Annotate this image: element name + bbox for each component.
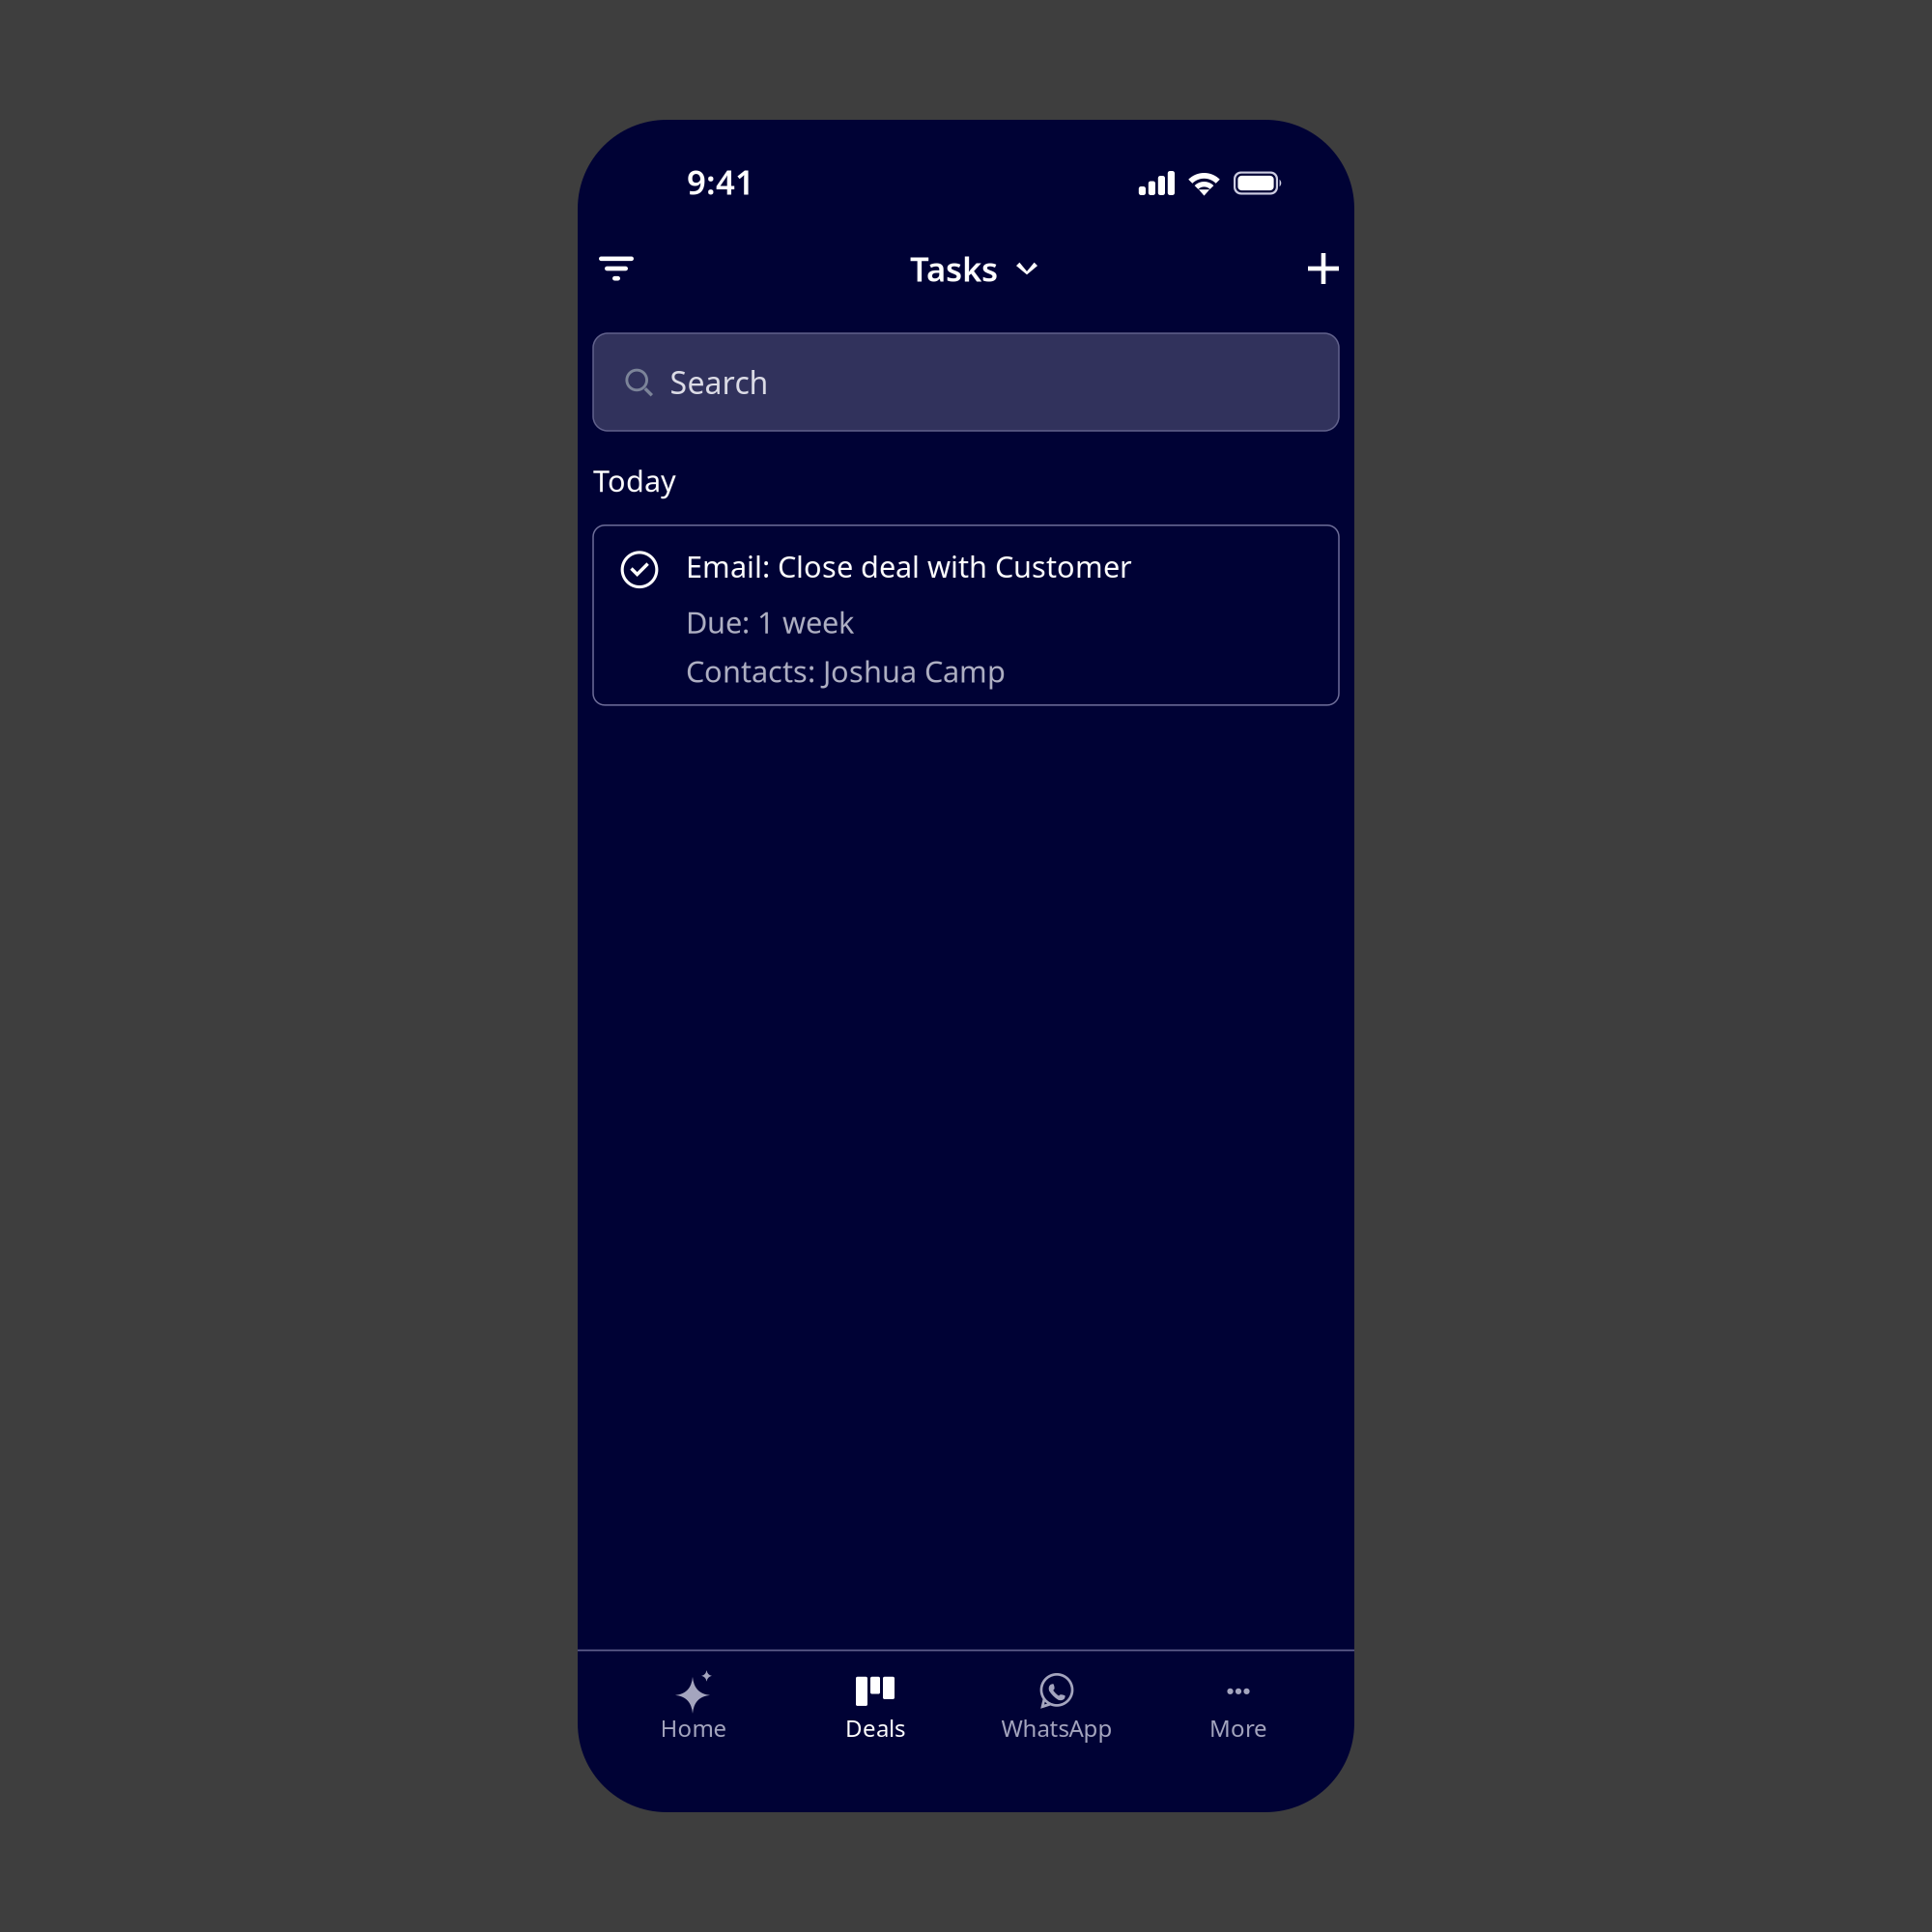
button[interactable]: More (1148, 1665, 1329, 1752)
button[interactable]: Tasks (910, 238, 1037, 299)
staticText: Email: Close deal with Customer (686, 546, 1132, 586)
button[interactable]: WhatsApp (966, 1665, 1148, 1752)
button[interactable]: Filter (578, 238, 655, 299)
staticText: Due: 1 week (686, 602, 854, 642)
staticText: Contacts: Joshua Camp (686, 651, 1006, 691)
button[interactable]: Add task (1293, 238, 1354, 299)
staticText: WhatsApp (1001, 1713, 1112, 1743)
button[interactable]: Email: Close deal with Customer (593, 525, 1339, 705)
staticText: More (1209, 1713, 1267, 1743)
staticText: Today (593, 461, 676, 500)
staticText: 9:41 (687, 159, 754, 204)
button[interactable]: Search (593, 333, 1339, 431)
button[interactable]: Deals (784, 1665, 966, 1752)
staticText: Search (670, 362, 768, 403)
button[interactable]: Home (603, 1665, 784, 1752)
staticText: Home (660, 1713, 727, 1743)
staticText: Deals (845, 1713, 905, 1743)
staticText: Tasks (910, 246, 998, 291)
